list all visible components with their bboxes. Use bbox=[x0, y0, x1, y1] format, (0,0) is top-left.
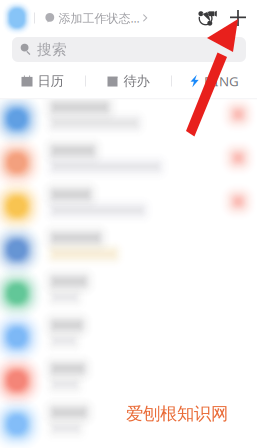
button[interactable]: 26 bbox=[0, 64, 85, 98]
button[interactable] bbox=[0, 361, 257, 404]
button[interactable]: My profile bbox=[0, 0, 34, 36]
button[interactable]: 添加工作状态... bbox=[35, 0, 148, 36]
staticText: 日历 bbox=[37, 73, 63, 89]
button[interactable] bbox=[0, 404, 257, 448]
button[interactable]: Video meeting bbox=[193, 0, 223, 36]
button[interactable] bbox=[0, 143, 257, 186]
staticText: DING bbox=[204, 72, 239, 90]
staticText: 添加工作状态... bbox=[58, 10, 139, 26]
staticText: 待办 bbox=[123, 73, 149, 89]
button[interactable]: DING bbox=[172, 64, 257, 98]
staticText: 爱刨根知识网 bbox=[126, 403, 228, 424]
button[interactable] bbox=[0, 186, 257, 230]
button[interactable]: Add bbox=[223, 0, 253, 36]
button[interactable]: 待办 bbox=[86, 64, 171, 98]
button[interactable] bbox=[0, 99, 257, 143]
staticText: 搜索 bbox=[37, 40, 67, 58]
button[interactable] bbox=[0, 317, 257, 361]
staticText: 26 bbox=[22, 77, 32, 87]
button[interactable] bbox=[0, 230, 257, 273]
button[interactable]: 搜索 bbox=[12, 37, 246, 62]
button[interactable] bbox=[0, 273, 257, 317]
